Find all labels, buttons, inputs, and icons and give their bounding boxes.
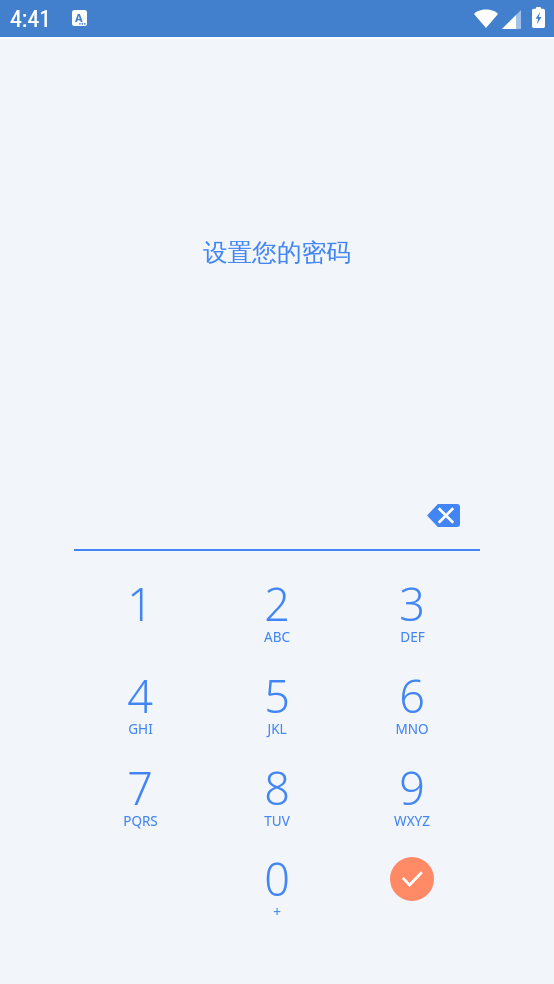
staticText: A [75, 10, 83, 25]
button[interactable]: 1 [81, 563, 199, 653]
button[interactable]: 8 [218, 747, 336, 837]
staticText: DEF [400, 628, 425, 646]
button[interactable]: Backspace [421, 493, 465, 537]
staticText: 3 [399, 573, 425, 634]
button[interactable]: 9 [353, 747, 471, 837]
staticText: WXYZ [394, 812, 430, 830]
staticText: GHI [128, 720, 153, 738]
staticText: PQRS [123, 812, 158, 830]
staticText: 7 [127, 757, 153, 818]
staticText: 2 [264, 573, 290, 634]
staticText: TUV [264, 812, 290, 830]
staticText: 0 [264, 848, 290, 909]
button[interactable]: 6 [353, 655, 471, 745]
button[interactable]: 3 [353, 563, 471, 653]
button[interactable]: 0 [218, 838, 336, 928]
staticText: 1 [127, 573, 153, 634]
staticText: 设置您的密码 [203, 237, 351, 268]
staticText: + [273, 903, 281, 921]
button[interactable]: 5 [218, 655, 336, 745]
staticText: ABC [264, 628, 290, 646]
staticText: JKL [267, 720, 287, 738]
button[interactable]: 4 [81, 655, 199, 745]
button[interactable]: Confirm [390, 857, 434, 901]
staticText: 4:41 [10, 5, 52, 33]
button[interactable]: 2 [218, 563, 336, 653]
staticText: 9 [399, 757, 425, 818]
staticText: MNO [395, 720, 429, 738]
staticText: 4 [127, 665, 153, 726]
staticText: 6 [399, 665, 425, 726]
staticText: 5 [264, 665, 290, 726]
staticText: 8 [264, 757, 290, 818]
button[interactable]: 7 [81, 747, 199, 837]
